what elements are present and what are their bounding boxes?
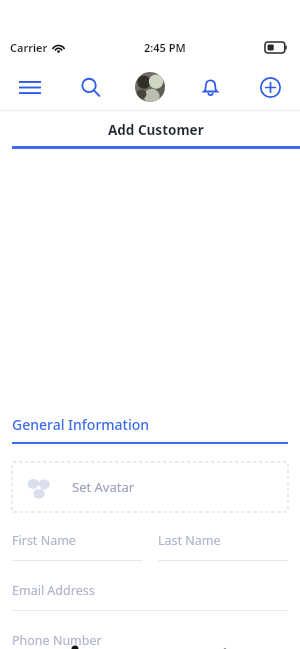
staticText: First Name bbox=[12, 532, 76, 549]
staticText: Carrier bbox=[10, 40, 48, 55]
button[interactable]: Add bbox=[240, 64, 300, 110]
button[interactable]: Notifications bbox=[180, 64, 240, 110]
button[interactable]: First Name bbox=[12, 532, 142, 561]
staticText: General Information bbox=[12, 415, 150, 434]
staticText: Set Avatar bbox=[72, 478, 135, 496]
staticText: Phone Number bbox=[12, 632, 102, 649]
staticText: Email Address bbox=[12, 582, 95, 599]
button[interactable]: Add Customer bbox=[12, 121, 300, 149]
staticText: 2:45 PM bbox=[144, 40, 186, 55]
button[interactable]: Menu bbox=[0, 64, 60, 110]
button[interactable]: Set Avatar bbox=[12, 462, 288, 512]
button[interactable]: Search bbox=[60, 64, 120, 110]
staticText: Last Name bbox=[158, 532, 221, 549]
button[interactable]: Email Address bbox=[12, 582, 288, 611]
button[interactable]: Profile bbox=[120, 64, 180, 110]
button[interactable]: Phone Number bbox=[12, 632, 288, 649]
staticText: Add Customer bbox=[108, 121, 204, 139]
button[interactable]: Last Name bbox=[158, 532, 288, 561]
